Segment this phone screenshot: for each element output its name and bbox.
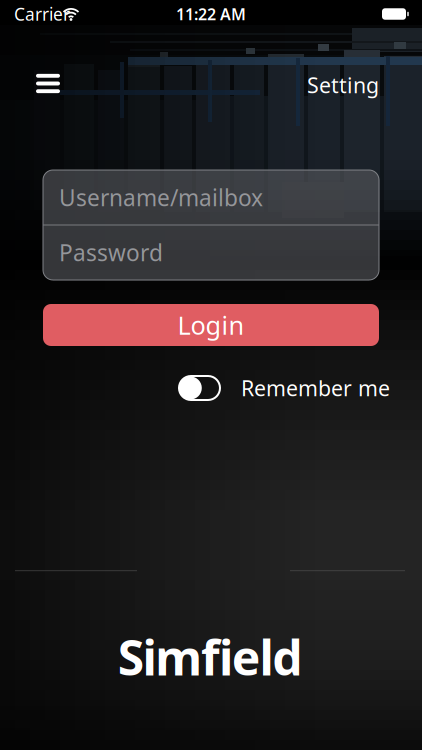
button[interactable]: Username/mailbox: [59, 170, 363, 224]
staticText: Carrier: [14, 2, 70, 25]
button[interactable]: Setting: [269, 67, 379, 103]
staticText: Password: [59, 237, 163, 267]
button[interactable]: Login: [43, 304, 379, 346]
button[interactable]: Remember me: [177, 375, 221, 401]
staticText: Remember me: [241, 374, 390, 402]
button[interactable]: Menu: [26, 65, 70, 101]
staticText: Simfield: [118, 625, 302, 689]
button[interactable]: Password: [59, 225, 363, 279]
staticText: Login: [177, 308, 244, 342]
staticText: Setting: [307, 71, 379, 99]
staticText: 11:22 AM: [176, 3, 246, 25]
staticText: Username/mailbox: [59, 182, 263, 212]
